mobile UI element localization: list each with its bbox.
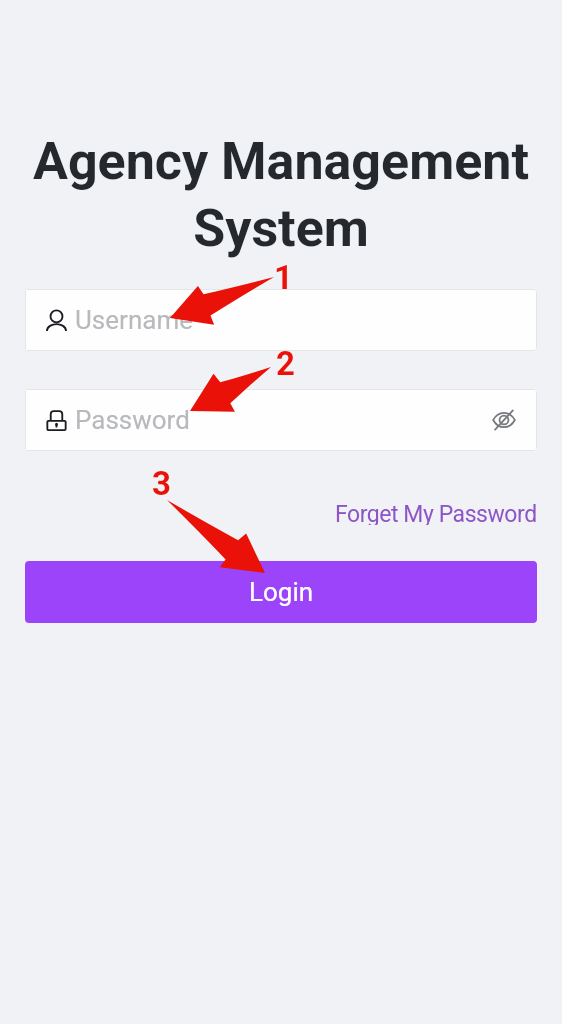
button[interactable]: Forget My Password [333, 495, 539, 531]
button[interactable]: Password [25, 389, 537, 451]
staticText: Username [75, 305, 193, 335]
button[interactable]: Show password [487, 403, 521, 437]
button[interactable]: Username [25, 289, 537, 351]
staticText: 1 [274, 258, 293, 297]
staticText: Login [249, 577, 314, 607]
staticText: 3 [152, 464, 171, 503]
staticText: 2 [276, 344, 295, 383]
staticText: Forget My Password [335, 501, 537, 525]
staticText: Password [75, 405, 190, 435]
button[interactable]: Login [25, 561, 537, 623]
staticText: Agency Management System [0, 131, 562, 259]
